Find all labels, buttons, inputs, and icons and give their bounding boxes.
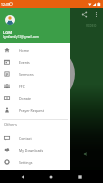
button[interactable]: Donate: [0, 92, 70, 104]
staticText: Sermons: [19, 72, 34, 77]
button[interactable]: My Downloads: [0, 144, 70, 156]
button[interactable]: Contact: [0, 132, 70, 144]
button[interactable]: Back: [18, 172, 28, 182]
staticText: Others: [4, 122, 17, 127]
button[interactable]: Events: [0, 56, 70, 68]
staticText: Prayer Request: [19, 108, 44, 113]
button[interactable]: FFC: [0, 80, 70, 92]
button[interactable]: Home: [46, 172, 56, 182]
button[interactable]: Profile photo: [5, 15, 15, 25]
staticText: lgmfamily13@gmail.com: [3, 35, 39, 39]
button[interactable]: Prayer Request: [0, 104, 70, 116]
staticText: Home: [19, 48, 29, 53]
staticText: 12:39: [1, 2, 10, 7]
button[interactable]: Share: [80, 10, 89, 19]
button[interactable]: Sermons: [0, 68, 70, 80]
button[interactable]: Home: [0, 44, 70, 56]
staticText: My Downloads: [19, 148, 44, 153]
staticText: Events: [19, 60, 30, 65]
button[interactable]: Volume: [83, 151, 89, 157]
staticText: Settings: [19, 160, 33, 165]
staticText: VIDEO: [86, 24, 97, 28]
staticText: FFC: [19, 84, 25, 89]
button[interactable]: More options: [92, 10, 101, 19]
button[interactable]: Settings: [0, 156, 70, 168]
button[interactable]: Recents: [75, 172, 85, 182]
staticText: Contact: [19, 136, 32, 141]
staticText: LGM: [3, 30, 13, 36]
staticText: Donate: [19, 96, 32, 101]
